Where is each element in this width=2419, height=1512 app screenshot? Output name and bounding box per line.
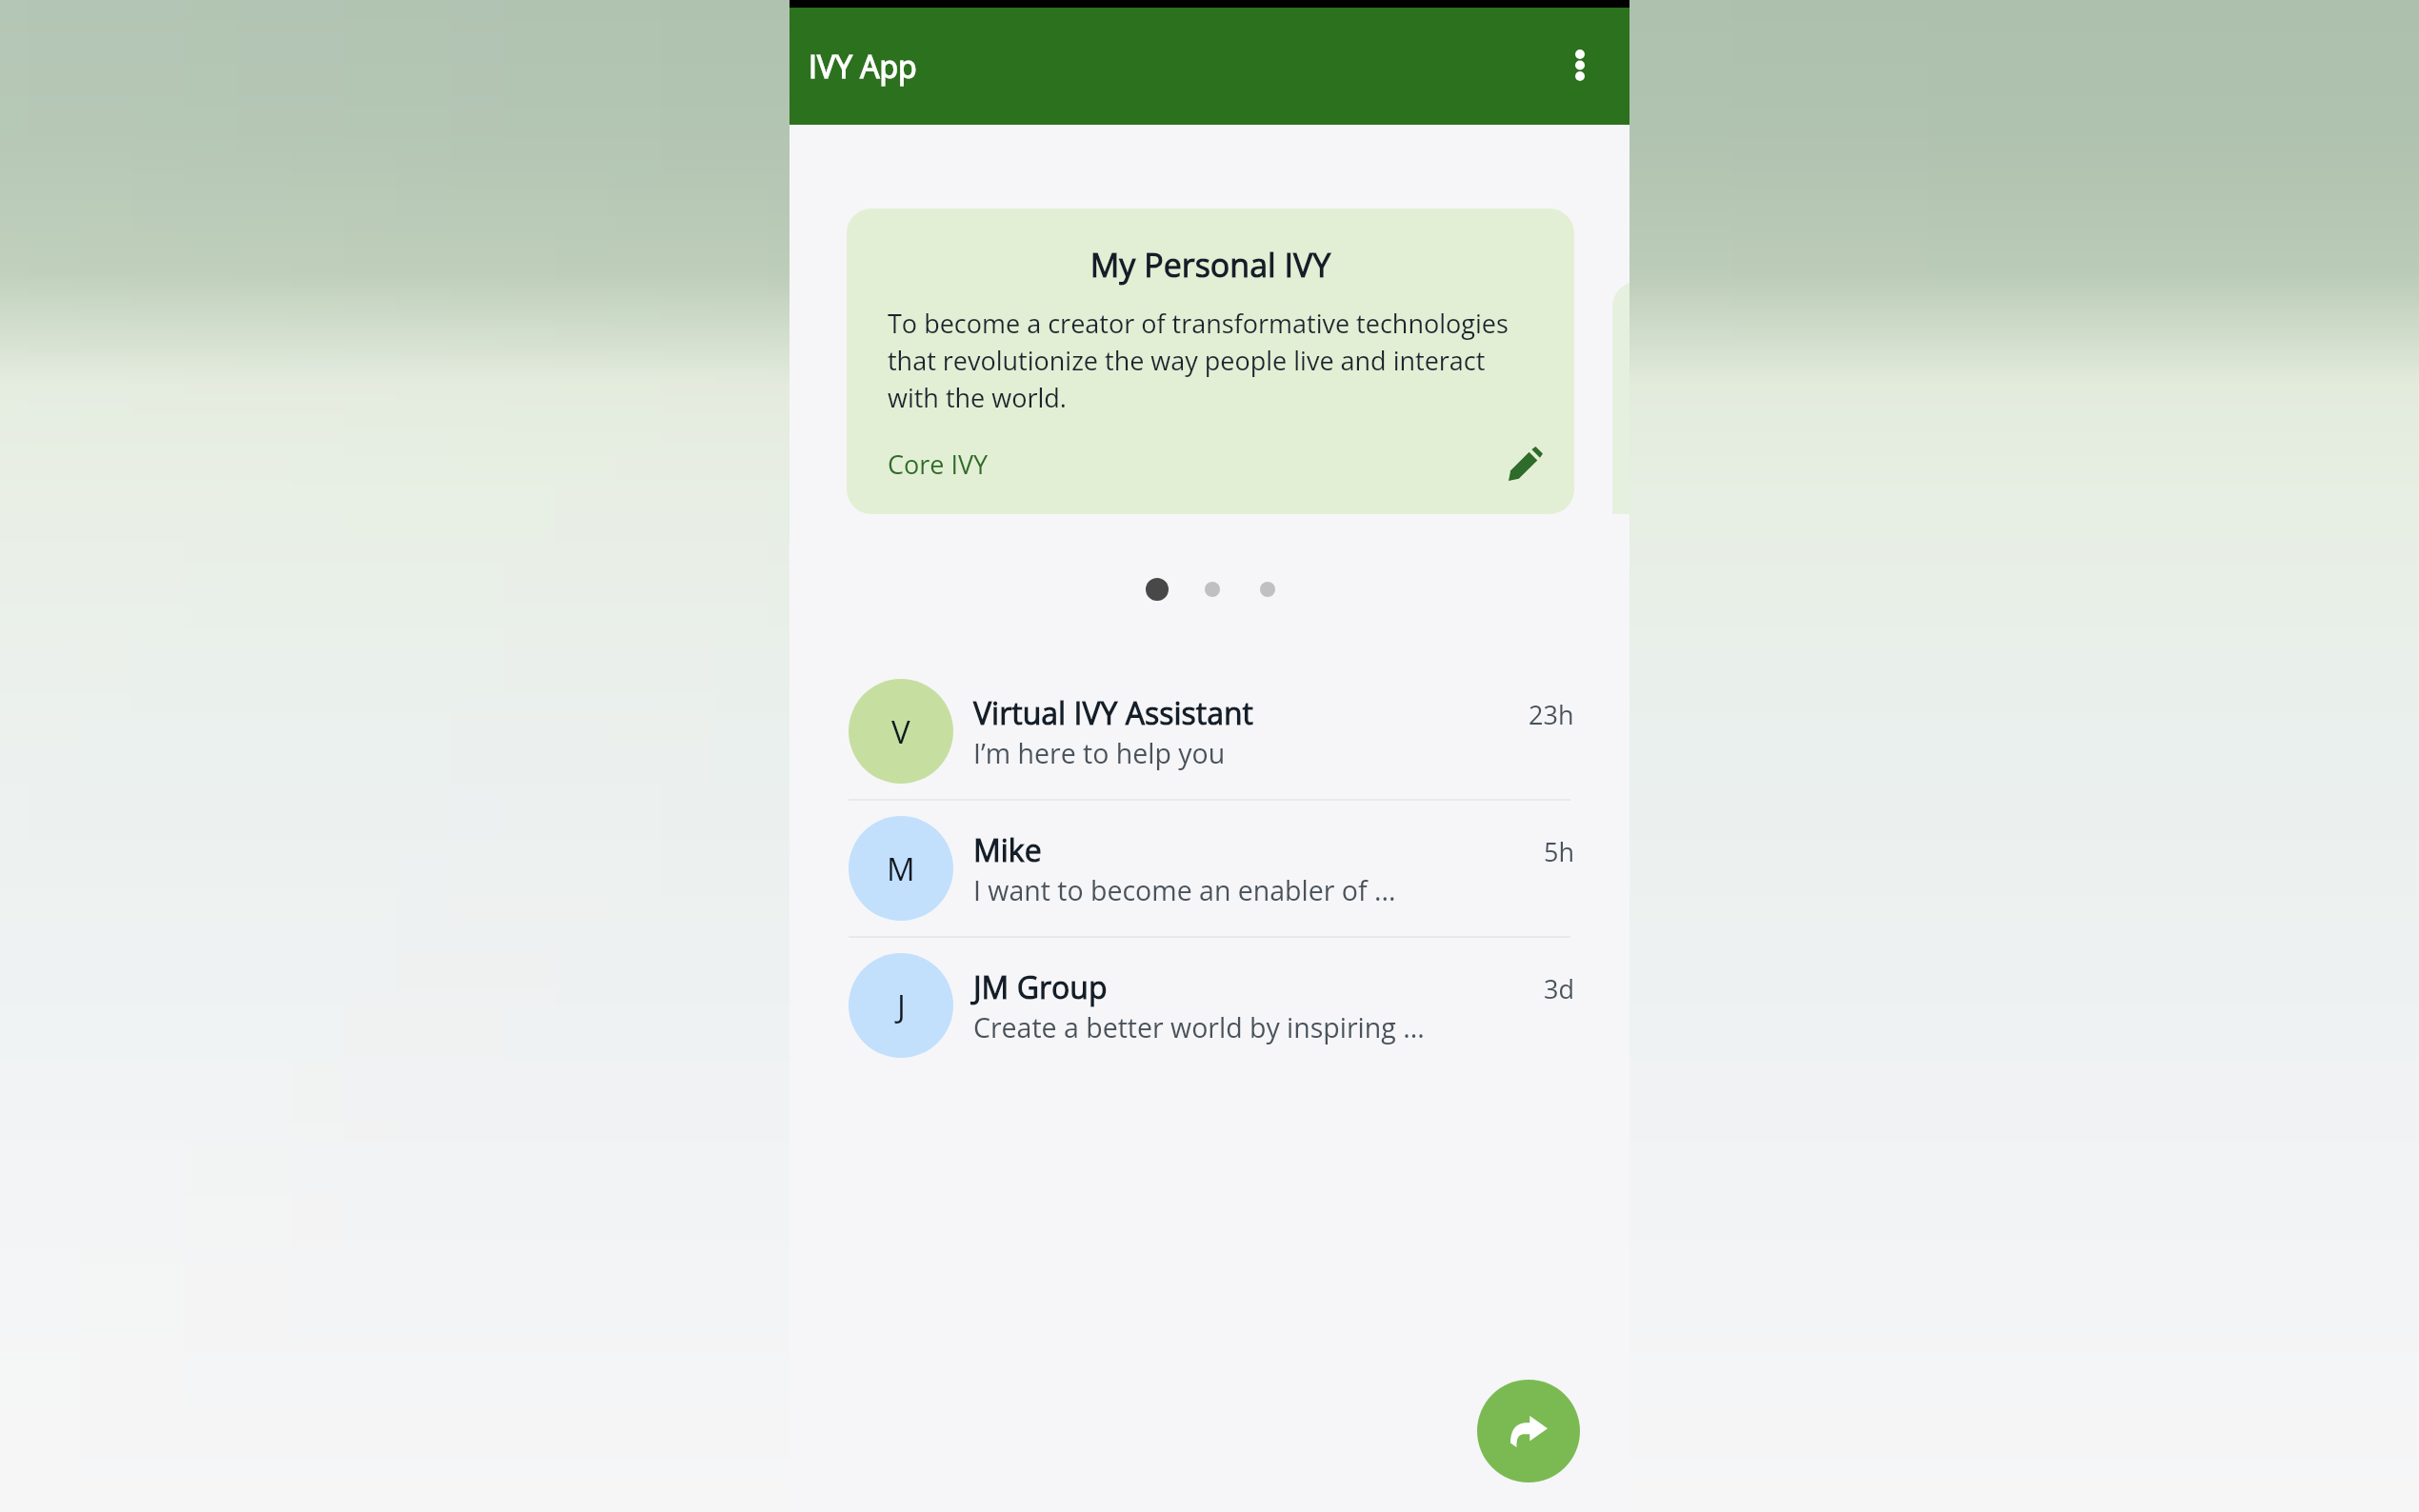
- staticText: 23h: [1529, 697, 1574, 732]
- staticText: M: [887, 847, 915, 890]
- button[interactable]: Share: [1477, 1380, 1580, 1482]
- button[interactable]: Edit: [1501, 439, 1550, 488]
- staticText: Create a better world by inspiring ...: [973, 1009, 1425, 1046]
- staticText: My Personal IVY: [847, 243, 1574, 287]
- staticText: 3d: [1544, 971, 1574, 1006]
- staticText: Core IVY: [888, 447, 989, 482]
- staticText: IVY App: [809, 46, 917, 88]
- button[interactable]: My Personal IVY: [847, 209, 1574, 514]
- button[interactable]: V: [790, 664, 1629, 799]
- button[interactable]: Page 1: [1146, 578, 1169, 601]
- staticText: I want to become an enabler of ...: [973, 872, 1396, 909]
- button[interactable]: M: [790, 801, 1629, 936]
- staticText: I’m here to help you: [973, 735, 1226, 772]
- staticText: Virtual IVY Assistant: [973, 692, 1253, 734]
- staticText: JM Group: [973, 966, 1108, 1008]
- staticText: V: [891, 710, 910, 753]
- button[interactable]: More options: [1546, 32, 1614, 101]
- staticText: Mike: [973, 829, 1042, 871]
- staticText: 5h: [1544, 834, 1574, 869]
- staticText: J: [897, 985, 906, 1027]
- button[interactable]: J: [790, 938, 1629, 1073]
- staticText: To become a creator of transformative te…: [888, 306, 1527, 415]
- button[interactable]: Page 2: [1205, 582, 1220, 597]
- button[interactable]: Page 3: [1260, 582, 1275, 597]
